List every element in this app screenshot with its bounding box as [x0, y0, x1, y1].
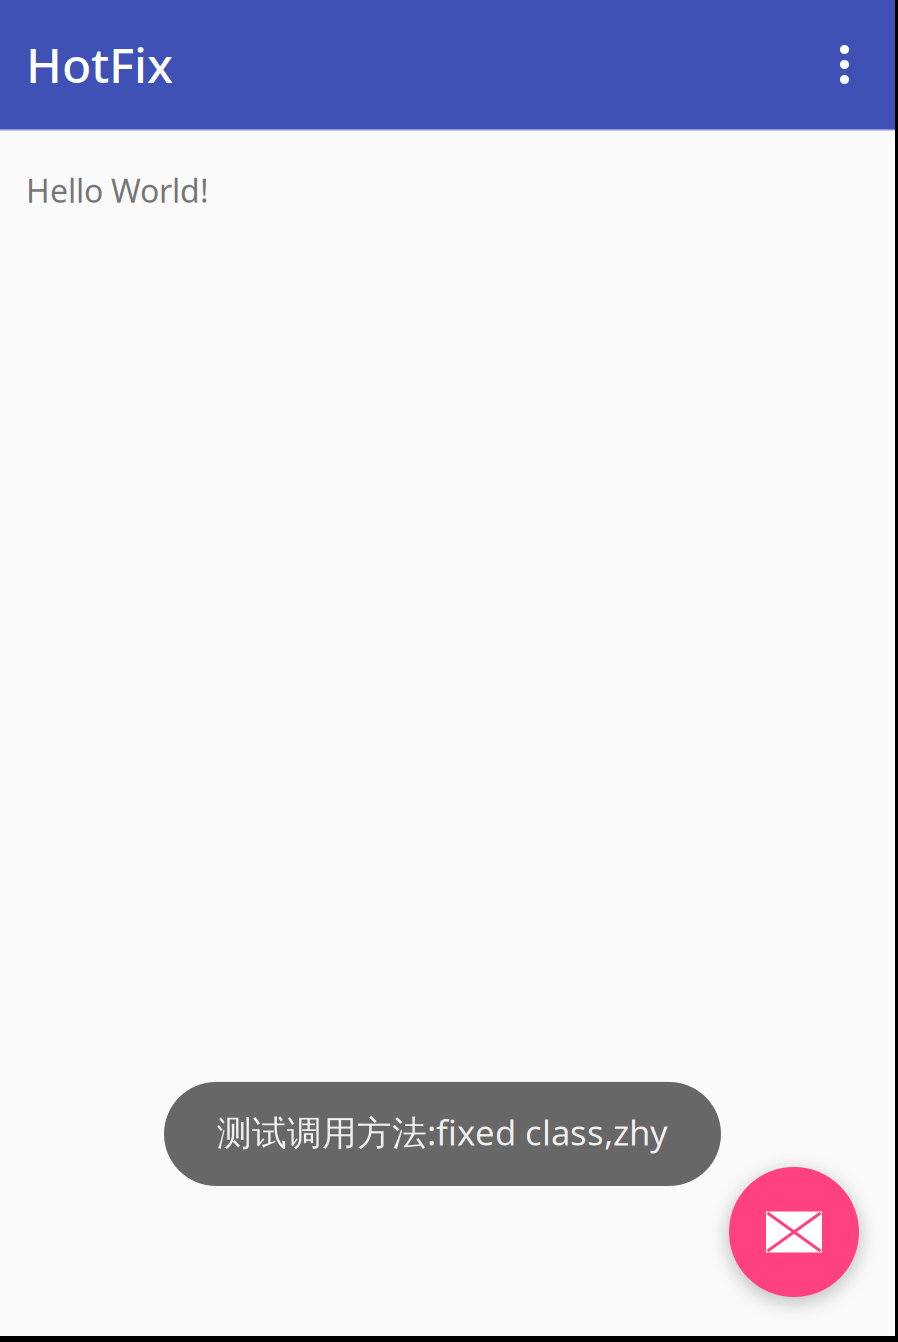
button[interactable]: More options [794, 0, 895, 129]
button[interactable]: Compose message [729, 1167, 859, 1297]
staticText: Hello World! [26, 169, 209, 211]
staticText: 测试调用方法:fixed class,zhy [217, 1109, 668, 1155]
staticText: HotFix [26, 33, 173, 96]
